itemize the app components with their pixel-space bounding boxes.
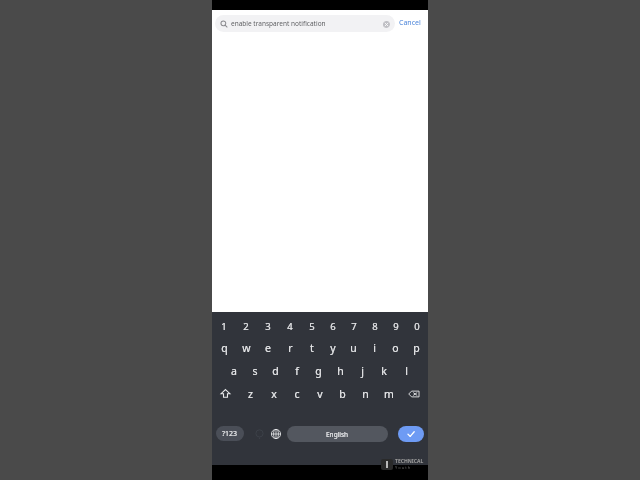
- button[interactable]: g: [307, 359, 329, 382]
- staticText: q: [221, 341, 228, 355]
- button[interactable]: l: [395, 359, 417, 382]
- staticText: r: [288, 341, 293, 355]
- button[interactable]: c: [285, 382, 308, 405]
- button[interactable]: English: [287, 426, 388, 442]
- staticText: l: [405, 364, 408, 378]
- button[interactable]: Clear query: [382, 20, 390, 28]
- staticText: m: [384, 387, 394, 401]
- button[interactable]: Search: [398, 426, 424, 442]
- staticText: 6: [330, 320, 336, 333]
- button[interactable]: p: [406, 336, 427, 359]
- staticText: e: [265, 341, 271, 355]
- staticText: j: [361, 364, 364, 378]
- staticText: c: [294, 387, 300, 401]
- button[interactable]: s: [244, 359, 265, 382]
- button[interactable]: j: [351, 359, 373, 382]
- button[interactable]: z: [239, 382, 262, 405]
- button[interactable]: y: [322, 336, 343, 359]
- staticText: TECHNICAL: [395, 458, 424, 465]
- staticText: u: [350, 341, 357, 355]
- staticText: h: [337, 364, 344, 378]
- staticText: 1: [221, 320, 227, 333]
- button[interactable]: Shift: [212, 382, 239, 405]
- staticText: w: [242, 341, 251, 355]
- button[interactable]: i: [364, 336, 385, 359]
- staticText: Y o u t h: [395, 465, 411, 470]
- staticText: b: [339, 387, 346, 401]
- staticText: t: [310, 341, 314, 355]
- button[interactable]: k: [373, 359, 395, 382]
- staticText: d: [272, 364, 279, 378]
- staticText: o: [392, 341, 399, 355]
- button[interactable]: a: [223, 359, 244, 382]
- button[interactable]: 6: [322, 316, 343, 336]
- staticText: ?123: [222, 429, 238, 439]
- staticText: z: [248, 387, 253, 401]
- staticText: 3: [265, 320, 271, 333]
- staticText: i: [373, 341, 376, 355]
- button[interactable]: ?123: [216, 426, 244, 441]
- staticText: Cancel: [399, 18, 421, 28]
- staticText: 7: [351, 320, 357, 333]
- button[interactable]: b: [331, 382, 354, 405]
- button[interactable]: 3: [257, 316, 279, 336]
- button[interactable]: x: [262, 382, 285, 405]
- button[interactable]: 2: [235, 316, 257, 336]
- button[interactable]: 1: [213, 316, 235, 336]
- button[interactable]: e: [257, 336, 279, 359]
- button[interactable]: f: [286, 359, 307, 382]
- button[interactable]: u: [343, 336, 364, 359]
- staticText: a: [231, 364, 237, 378]
- staticText: n: [362, 387, 369, 401]
- staticText: English: [326, 430, 349, 439]
- staticText: f: [295, 364, 299, 378]
- staticText: 5: [309, 320, 315, 333]
- button[interactable]: n: [354, 382, 377, 405]
- staticText: y: [330, 341, 336, 355]
- staticText: 0: [414, 320, 420, 333]
- button[interactable]: 5: [301, 316, 322, 336]
- staticText: v: [317, 387, 323, 401]
- button[interactable]: r: [279, 336, 301, 359]
- staticText: p: [413, 341, 420, 355]
- button[interactable]: Change keyboard language: [269, 427, 283, 441]
- button[interactable]: 9: [385, 316, 406, 336]
- staticText: s: [252, 364, 258, 378]
- button[interactable]: 0: [406, 316, 427, 336]
- button[interactable]: v: [308, 382, 331, 405]
- button[interactable]: 7: [343, 316, 364, 336]
- button[interactable]: o: [385, 336, 406, 359]
- staticText: 8: [372, 320, 378, 333]
- button[interactable]: t: [301, 336, 322, 359]
- button[interactable]: Cancel: [395, 15, 425, 31]
- staticText: x: [271, 387, 277, 401]
- button[interactable]: q: [213, 336, 235, 359]
- button[interactable]: 8: [364, 316, 385, 336]
- staticText: enable transparent notification: [231, 19, 382, 28]
- button[interactable]: 4: [279, 316, 301, 336]
- button[interactable]: d: [265, 359, 286, 382]
- staticText: 2: [243, 320, 249, 333]
- staticText: 9: [393, 320, 399, 333]
- button[interactable]: Emoji: [252, 427, 266, 441]
- staticText: k: [381, 364, 387, 378]
- staticText: 4: [287, 320, 293, 333]
- button[interactable]: m: [377, 382, 400, 405]
- button[interactable]: enable transparent notification: [215, 15, 395, 32]
- button[interactable]: h: [329, 359, 351, 382]
- button[interactable]: w: [235, 336, 257, 359]
- button[interactable]: Backspace: [400, 382, 428, 405]
- staticText: g: [315, 364, 322, 378]
